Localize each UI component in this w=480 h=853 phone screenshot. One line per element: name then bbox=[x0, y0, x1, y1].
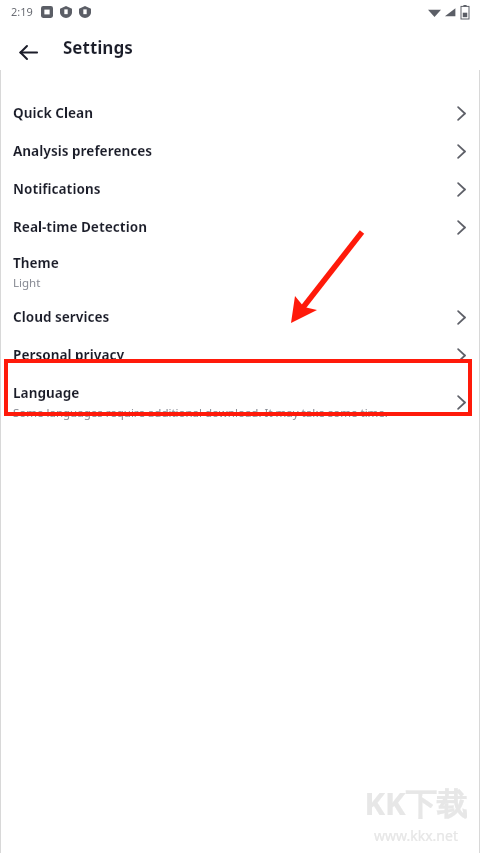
button[interactable]: Theme bbox=[0, 246, 480, 298]
staticText: Personal privacy bbox=[13, 346, 125, 364]
staticText: Analysis preferences bbox=[13, 142, 153, 160]
staticText: Real-time Detection bbox=[13, 218, 147, 236]
button[interactable]: Personal privacy bbox=[0, 336, 480, 374]
staticText: Settings bbox=[63, 36, 133, 59]
staticText: Language bbox=[13, 384, 80, 402]
button[interactable]: Analysis preferences bbox=[0, 132, 480, 170]
staticText: Cloud services bbox=[13, 308, 110, 326]
staticText: Light bbox=[13, 275, 41, 291]
button[interactable]: Language bbox=[0, 377, 480, 427]
button[interactable]: Quick Clean bbox=[0, 94, 480, 132]
staticText: Notifications bbox=[13, 180, 101, 198]
staticText: Some languages require additional downlo… bbox=[13, 405, 388, 421]
button[interactable]: Notifications bbox=[0, 170, 480, 208]
staticText: KK下载 bbox=[364, 782, 468, 824]
staticText: 2:19 bbox=[11, 4, 33, 19]
button[interactable]: Cloud services bbox=[0, 298, 480, 336]
staticText: Theme bbox=[13, 254, 59, 272]
staticText: Quick Clean bbox=[13, 104, 93, 122]
button[interactable]: Back bbox=[10, 34, 46, 70]
button[interactable]: Real-time Detection bbox=[0, 208, 480, 246]
staticText: www.kkx.net bbox=[374, 826, 458, 845]
